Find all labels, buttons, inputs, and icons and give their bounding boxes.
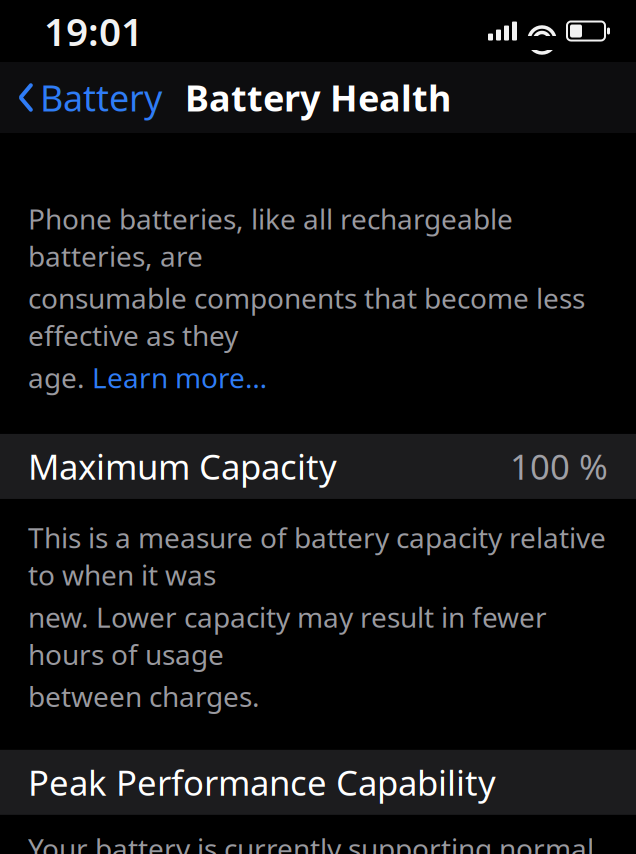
button[interactable]: Peak Performance Capability xyxy=(0,750,636,815)
button[interactable]: Learn more… xyxy=(92,359,267,396)
staticText: age. xyxy=(28,359,92,396)
staticText: 100 % xyxy=(510,443,608,489)
button[interactable]: Maximum Capacity xyxy=(0,434,636,499)
staticText: Your battery is currently supporting nor… xyxy=(28,830,594,854)
staticText: This is a measure of battery capacity re… xyxy=(28,519,606,593)
staticText: Maximum Capacity xyxy=(28,443,337,489)
staticText: consumable components that become less e… xyxy=(28,279,585,354)
button[interactable]: Battery xyxy=(0,70,172,124)
staticText: Battery xyxy=(40,74,162,121)
staticText: Battery Health xyxy=(185,74,451,121)
staticText: Peak Performance Capability xyxy=(28,759,496,805)
staticText: new. Lower capacity may result in fewer … xyxy=(28,598,547,673)
staticText: Learn more… xyxy=(92,359,267,396)
staticText: Phone batteries, like all rechargeable b… xyxy=(28,200,513,274)
staticText: 19:01 xyxy=(44,5,143,57)
staticText: between charges. xyxy=(28,678,260,715)
